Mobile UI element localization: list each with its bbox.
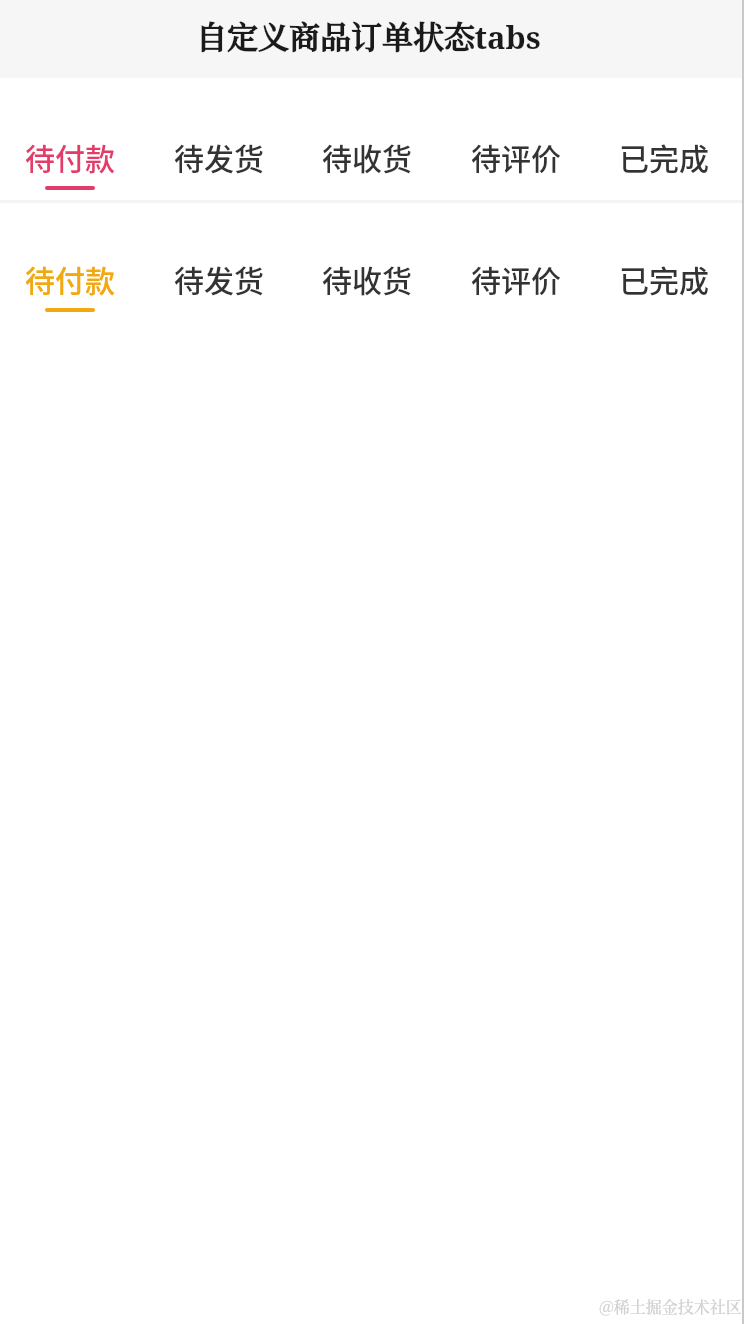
staticText: 已完成 (619, 257, 709, 300)
staticText: 待付款 (25, 257, 115, 300)
button[interactable]: 待收货 (322, 78, 412, 200)
staticText: @稀土掘金技术社区 (599, 1295, 742, 1318)
staticText: 待收货 (322, 257, 412, 300)
staticText: 待发货 (174, 257, 264, 300)
button[interactable]: 待评价 (471, 78, 561, 200)
button[interactable]: 已完成 (619, 78, 709, 200)
button[interactable]: 待评价 (471, 200, 561, 322)
staticText: 已完成 (619, 135, 709, 178)
staticText: 待收货 (322, 135, 412, 178)
staticText: 待发货 (174, 135, 264, 178)
button[interactable]: 待收货 (322, 200, 412, 322)
staticText: 待付款 (25, 135, 115, 178)
staticText: 待评价 (471, 135, 561, 178)
button[interactable]: 待付款 (25, 78, 115, 200)
staticText: 自定义商品订单状态tabs (195, 13, 541, 58)
button[interactable]: 待发货 (174, 78, 264, 200)
button[interactable]: 待付款 (25, 200, 115, 322)
button[interactable]: 待发货 (174, 200, 264, 322)
button[interactable]: 已完成 (619, 200, 709, 322)
staticText: 待评价 (471, 257, 561, 300)
